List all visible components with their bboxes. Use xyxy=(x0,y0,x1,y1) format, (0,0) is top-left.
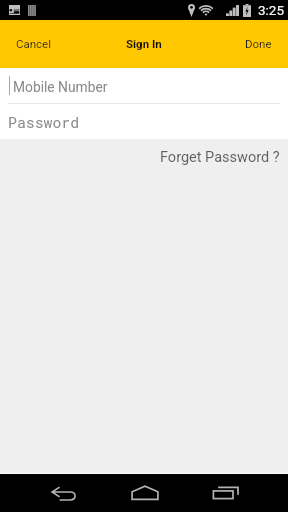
button[interactable]: Cancel xyxy=(0,26,66,63)
button[interactable]: Back xyxy=(28,474,100,512)
staticText: 3:25 xyxy=(258,2,285,18)
button[interactable]: Done xyxy=(231,26,288,63)
staticText: Mobile Number xyxy=(13,79,108,95)
button[interactable]: Recent apps xyxy=(190,474,262,512)
button[interactable]: Home xyxy=(109,474,181,512)
staticText: Sign In xyxy=(126,37,162,50)
staticText: Forget Password ? xyxy=(160,149,280,166)
staticText: Done xyxy=(245,37,272,50)
button[interactable]: Forget Password ? xyxy=(156,145,284,170)
staticText: Password xyxy=(8,112,80,132)
staticText: Cancel xyxy=(16,37,52,50)
button[interactable]: Password xyxy=(0,104,288,139)
button[interactable]: Mobile Number xyxy=(0,68,288,103)
